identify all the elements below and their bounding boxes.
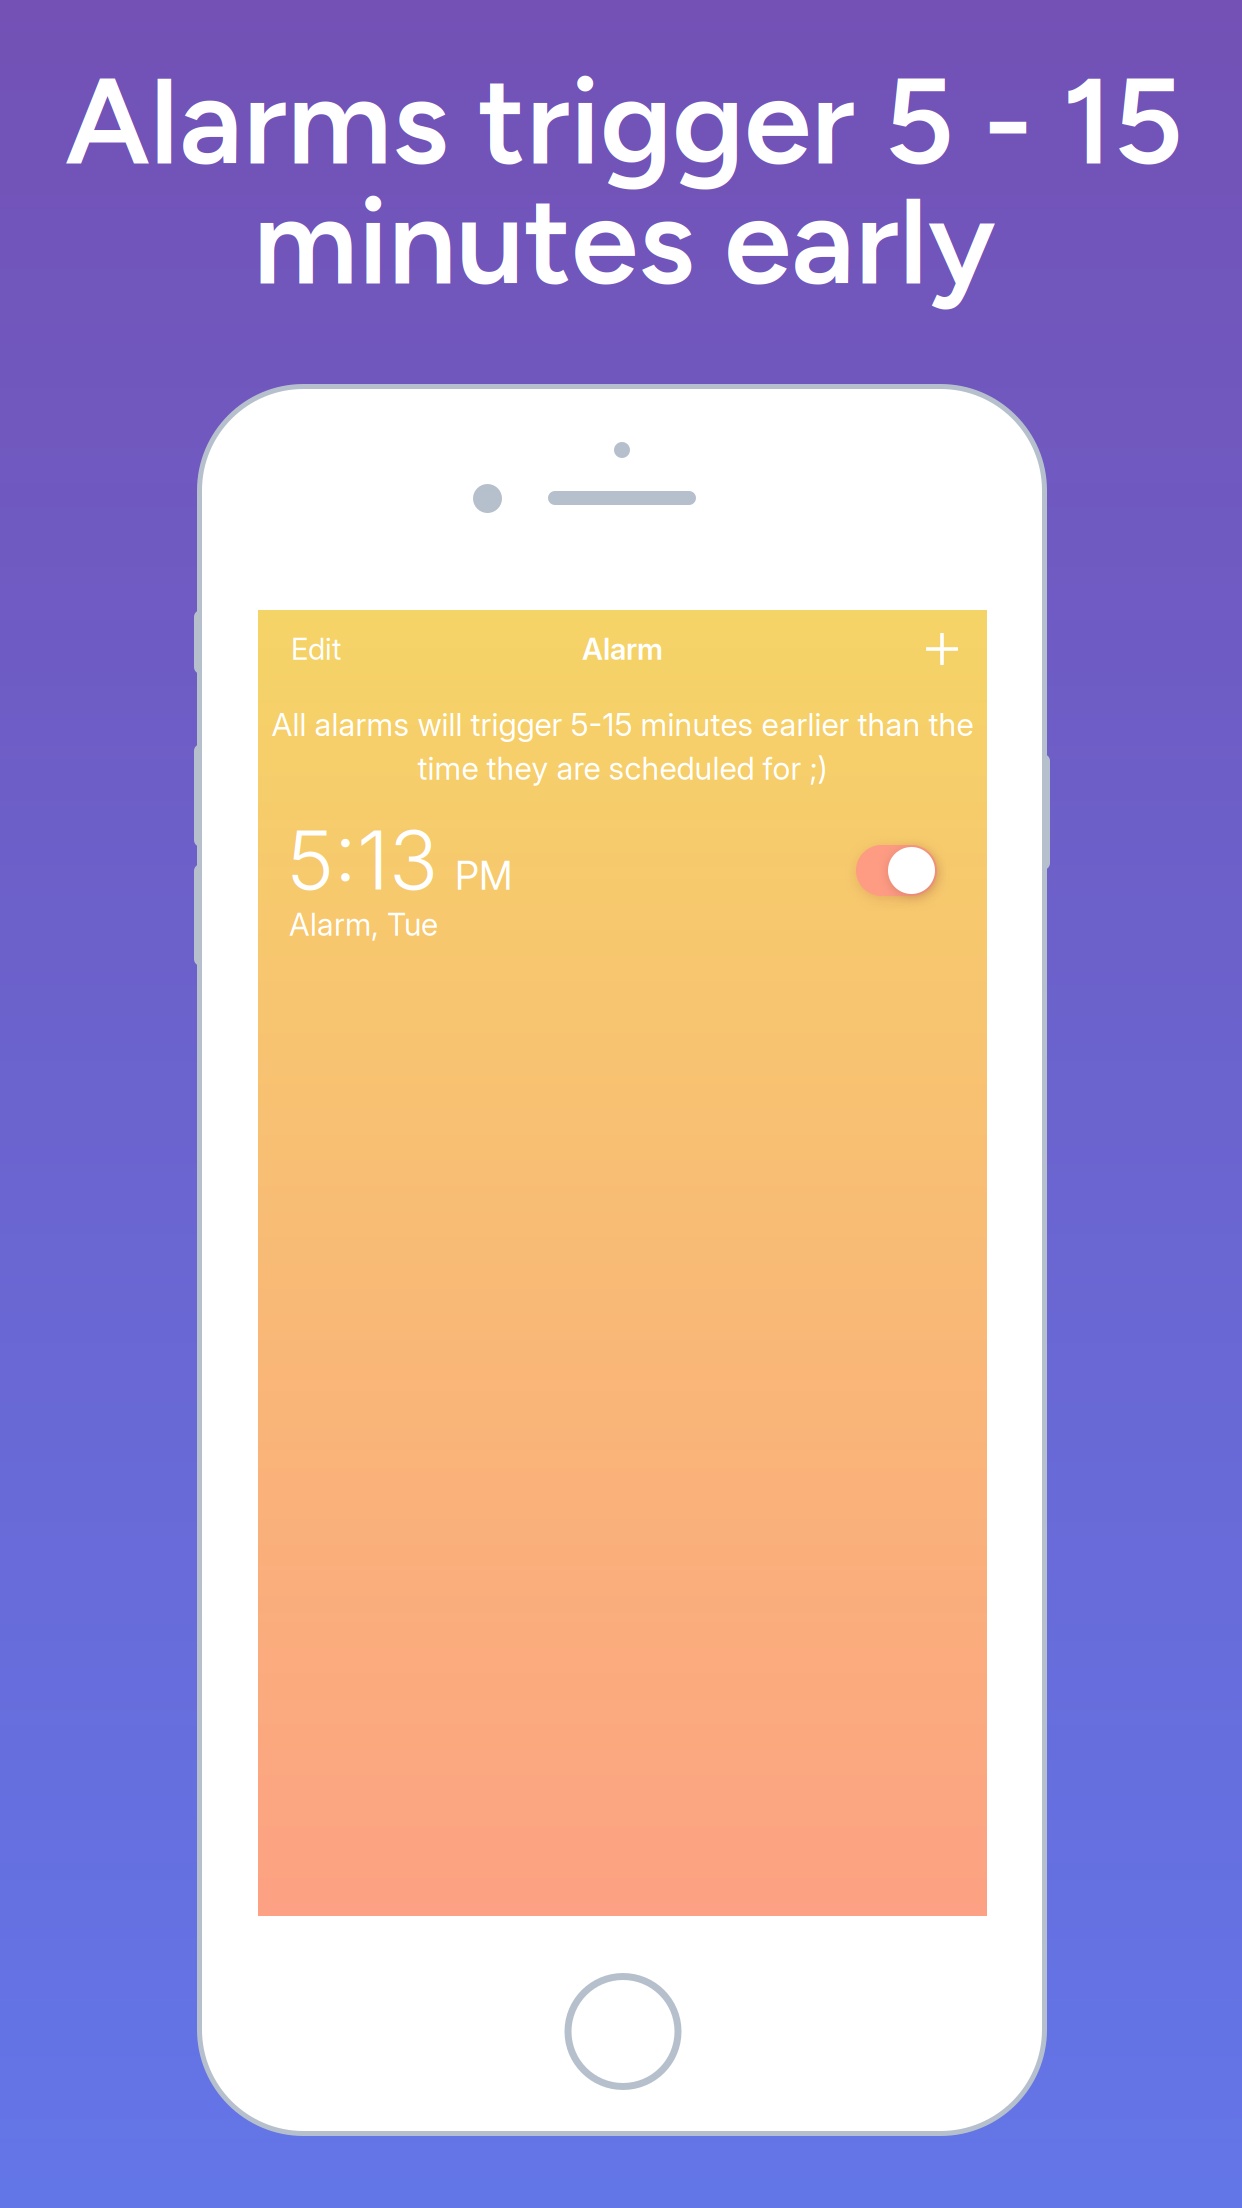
button[interactable]: Edit	[291, 620, 401, 678]
staticText: Alarm, Tue	[289, 906, 438, 943]
staticText: Alarms trigger 5 - 15	[65, 48, 1183, 194]
button[interactable]: Add alarm	[911, 618, 973, 680]
staticText: 5:13	[286, 811, 438, 909]
staticText: time they are scheduled for ;)	[417, 750, 827, 787]
staticText: PM	[455, 852, 512, 899]
staticText: Alarm	[582, 631, 663, 667]
button[interactable]: 5:13	[258, 826, 987, 976]
staticText: Edit	[291, 631, 341, 667]
staticText: minutes early	[253, 168, 995, 314]
staticText: All alarms will trigger 5-15 minutes ear…	[271, 706, 973, 744]
